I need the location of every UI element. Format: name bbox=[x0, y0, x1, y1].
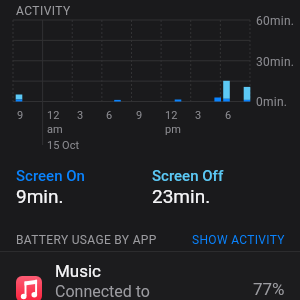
staticText: 77% bbox=[253, 279, 285, 299]
staticText: 23min. bbox=[152, 185, 211, 207]
other: Music app bbox=[16, 276, 42, 300]
staticText: Music bbox=[55, 261, 102, 281]
staticText: 15 Oct bbox=[47, 139, 80, 152]
staticText: 3 bbox=[77, 109, 84, 122]
staticText: 3 bbox=[195, 109, 202, 122]
staticText: am bbox=[47, 123, 63, 136]
staticText: pm bbox=[165, 123, 181, 136]
staticText: 9 bbox=[136, 109, 143, 122]
staticText: Screen On bbox=[16, 167, 85, 185]
button[interactable]: Music app bbox=[0, 252, 300, 300]
staticText: ACTIVITY bbox=[16, 4, 71, 18]
staticText: 12 bbox=[165, 109, 178, 122]
staticText: 30min. bbox=[256, 55, 295, 69]
staticText: 12 bbox=[47, 109, 60, 122]
staticText: 6 bbox=[106, 109, 113, 122]
staticText: 0min. bbox=[256, 95, 288, 109]
staticText: 6 bbox=[225, 109, 232, 122]
button[interactable]: SHOW ACTIVITY bbox=[190, 230, 287, 250]
staticText: Screen Off bbox=[152, 167, 224, 185]
staticText: 9 bbox=[17, 109, 24, 122]
staticText: 60min. bbox=[256, 14, 295, 28]
staticText: SHOW ACTIVITY bbox=[192, 233, 285, 247]
staticText: 9min. bbox=[16, 185, 64, 207]
staticText: BATTERY USAGE BY APP bbox=[16, 233, 157, 247]
staticText: Connected to bbox=[55, 282, 150, 300]
